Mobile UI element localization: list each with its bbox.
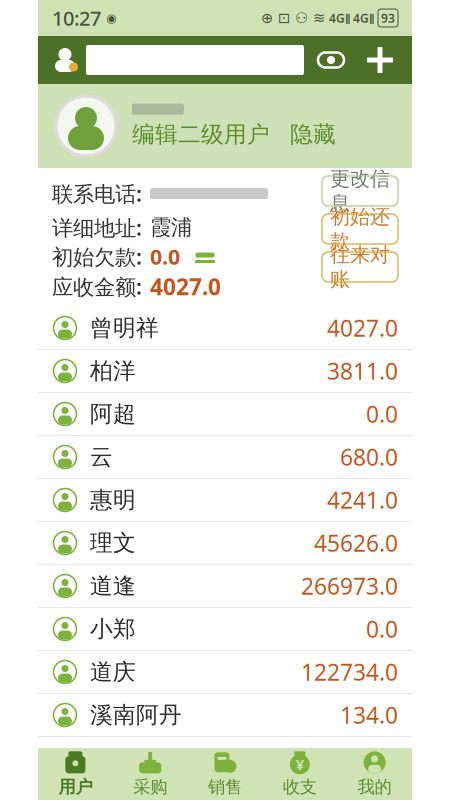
button[interactable]: 用户 (38, 748, 113, 800)
button[interactable]: ¥ (262, 748, 337, 800)
staticText: 云 (90, 443, 113, 471)
staticText: 联系电话: (52, 179, 142, 208)
staticText: 惠明 (90, 486, 136, 514)
staticText: 应收金额: (52, 272, 142, 301)
staticText: 我的 (358, 776, 392, 798)
button[interactable]: 理文 (38, 522, 412, 565)
staticText: 122734.0 (301, 657, 398, 687)
button[interactable]: 查看 (304, 43, 358, 77)
button[interactable] (86, 45, 304, 75)
staticText: ◉ (106, 11, 116, 25)
button[interactable]: 溪南阿丹 (38, 694, 412, 737)
staticText: 10:27 (52, 5, 101, 31)
button[interactable]: 往来对账 (322, 252, 398, 282)
staticText: 收支 (283, 776, 317, 798)
staticText: 更改信息 (330, 166, 390, 215)
button[interactable]: 编辑二级用户 (132, 121, 270, 148)
staticText: 道逢 (90, 572, 136, 600)
button[interactable]: 柏洋 (38, 350, 412, 393)
button[interactable]: 小郑 (38, 608, 412, 651)
staticText: 4027.0 (150, 271, 221, 301)
button[interactable]: 道庆 (38, 651, 412, 694)
staticText: 初始欠款: (52, 242, 142, 271)
staticText: 266973.0 (301, 571, 398, 601)
staticText: 阿超 (90, 400, 136, 428)
button[interactable]: 隐藏 (270, 121, 336, 148)
staticText: 采购 (133, 776, 167, 798)
staticText: 隐藏 (290, 121, 336, 148)
staticText: 4G⦀ 4G⦀ (329, 10, 374, 26)
button[interactable]: 初始还款 (322, 214, 398, 244)
button[interactable]: 我的 (337, 748, 412, 800)
button[interactable]: 用户 (48, 43, 82, 77)
staticText: 小郑 (90, 615, 136, 643)
staticText: 4027.0 (327, 313, 398, 343)
staticText: 4241.0 (327, 485, 398, 515)
staticText: 溪南阿丹 (90, 701, 182, 729)
staticText: 详细地址: (52, 213, 142, 242)
button[interactable]: 惠明 (38, 479, 412, 522)
staticText: 理文 (90, 529, 136, 557)
button[interactable]: 阿超 (38, 393, 412, 436)
staticText: 用户 (58, 776, 92, 798)
staticText: 柏洋 (90, 357, 136, 385)
staticText: 0.0 (366, 614, 398, 644)
staticText: 45626.0 (314, 528, 398, 558)
staticText: 680.0 (340, 442, 398, 472)
staticText: 道庆 (90, 658, 136, 686)
staticText: 3811.0 (327, 356, 398, 386)
staticText: 销售 (208, 776, 242, 798)
button[interactable]: 云 (38, 436, 412, 479)
staticText: 霞浦 (150, 214, 192, 241)
staticText: ¥ (296, 755, 304, 774)
staticText: 0.0 (150, 242, 180, 271)
button[interactable]: 采购 (113, 748, 188, 800)
button[interactable]: 销售 (188, 748, 262, 800)
button[interactable]: 道逢 (38, 565, 412, 608)
button[interactable]: 添加 (358, 43, 402, 77)
staticText: 往来对账 (330, 242, 390, 291)
staticText: 初始还款 (330, 204, 390, 253)
staticText: 编辑二级用户 (132, 121, 270, 148)
staticText: ⊕ ⊡ ⚇ ≋ (261, 10, 325, 26)
button[interactable]: 编辑初始欠款 (188, 243, 222, 269)
button[interactable]: 更改信息 (322, 176, 398, 206)
staticText: 曾明祥 (90, 314, 159, 342)
staticText: 134.0 (340, 700, 398, 730)
staticText: 0.0 (366, 399, 398, 429)
staticText: 93 (381, 10, 395, 26)
button[interactable]: 曾明祥 (38, 307, 412, 350)
